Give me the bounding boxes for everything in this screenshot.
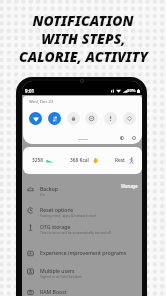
staticText: Multiple users bbox=[40, 267, 75, 274]
button[interactable]: Auto rotate lock bbox=[67, 112, 80, 125]
staticText: 3258 bbox=[32, 157, 43, 164]
staticText: Backup bbox=[40, 185, 58, 192]
button[interactable]: Screen record bbox=[123, 112, 136, 125]
button[interactable]: Mobile data bbox=[48, 112, 61, 125]
staticText: Signed in as Sahil Bendure bbox=[40, 274, 83, 279]
button[interactable]: Flashlight bbox=[104, 112, 117, 125]
staticText: This function will be automatically turn… bbox=[40, 230, 111, 236]
button[interactable]: RAM Boost bbox=[22, 288, 142, 296]
staticText: RAM Boost bbox=[40, 288, 67, 295]
staticText: 368 Kcal bbox=[70, 157, 89, 164]
button[interactable]: OTG storage bbox=[22, 223, 142, 236]
staticText: WITH STEPS, bbox=[41, 29, 126, 48]
staticText: CALORIE, ACTIVITY bbox=[19, 47, 148, 66]
button[interactable]: Experience improvement programs bbox=[22, 249, 142, 262]
staticText: OTG storage bbox=[40, 223, 71, 230]
button[interactable]: Dark mode bbox=[119, 135, 125, 141]
staticText: 9:01 bbox=[25, 88, 35, 94]
staticText: On bbox=[40, 192, 45, 197]
button[interactable]: Backup bbox=[22, 185, 142, 198]
staticText: NOTIFICATION bbox=[32, 11, 134, 30]
button[interactable]: 3258 bbox=[23, 147, 142, 174]
staticText: Factory reset, apps & network reset bbox=[40, 213, 97, 218]
staticText: 39% bbox=[127, 88, 136, 94]
button[interactable]: Multiple users bbox=[22, 267, 142, 280]
button[interactable]: Wi-Fi bbox=[29, 112, 42, 125]
button[interactable]: Manage bbox=[121, 183, 138, 189]
staticText: Rest bbox=[115, 157, 125, 164]
staticText: Experience improvement programs bbox=[40, 249, 127, 256]
staticText: Reset options bbox=[40, 206, 74, 213]
staticText: Wed, Dec 23 bbox=[29, 99, 54, 105]
button[interactable]: Do not disturb bbox=[85, 112, 98, 125]
button[interactable]: Settings bbox=[131, 135, 137, 141]
button[interactable]: Reset options bbox=[22, 206, 142, 219]
